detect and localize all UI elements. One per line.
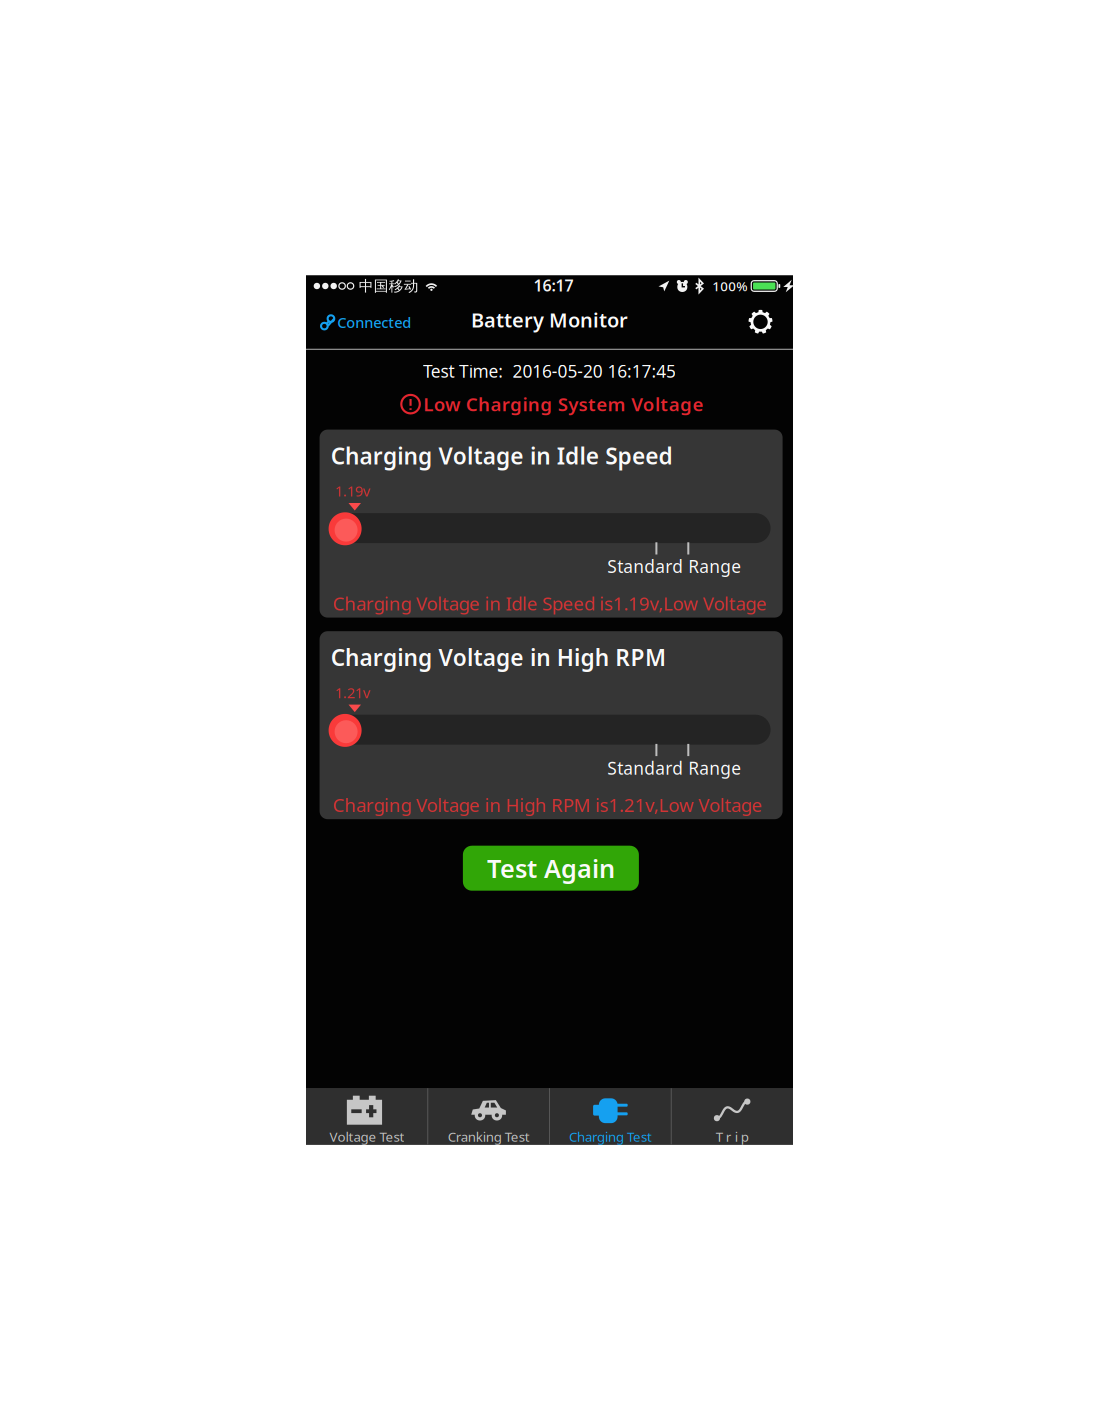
staticText: Charging Voltage in Idle Speed (331, 441, 672, 471)
staticText: Low Charging System Voltage (423, 391, 703, 416)
staticText: Test Again (487, 851, 615, 885)
staticText: T r i p (716, 1128, 749, 1145)
button[interactable]: Voltage Test (306, 1088, 428, 1144)
staticText: Charging Voltage in High RPM is1.21v,Low… (333, 792, 762, 817)
staticText: Battery Monitor (471, 307, 628, 333)
staticText: 16:17 (533, 275, 573, 296)
staticText: 100% (712, 277, 747, 295)
staticText: 1.19v (335, 481, 370, 501)
staticText: Voltage Test (329, 1128, 404, 1145)
staticText: Standard Range (607, 756, 741, 779)
button[interactable]: Test Again (463, 846, 639, 891)
staticText: Charging Voltage in High RPM (331, 642, 666, 672)
button[interactable]: Connected (314, 313, 417, 342)
staticText: Cranking Test (448, 1128, 530, 1145)
staticText: Test Time: 2016-05-20 16:17:45 (423, 359, 676, 382)
button[interactable]: T r i p (671, 1088, 793, 1144)
button[interactable]: Charging Test (549, 1088, 671, 1144)
staticText: 1.21v (335, 683, 370, 702)
staticText: Charging Voltage in Idle Speed is1.19v,L… (333, 591, 767, 616)
button[interactable]: Cranking Test (428, 1088, 550, 1144)
staticText: Standard Range (607, 555, 741, 578)
staticText: Connected (337, 313, 411, 332)
staticText: Charging Test (569, 1128, 652, 1145)
staticText: 中国移动 (359, 277, 419, 295)
button[interactable]: Settings (738, 310, 782, 345)
